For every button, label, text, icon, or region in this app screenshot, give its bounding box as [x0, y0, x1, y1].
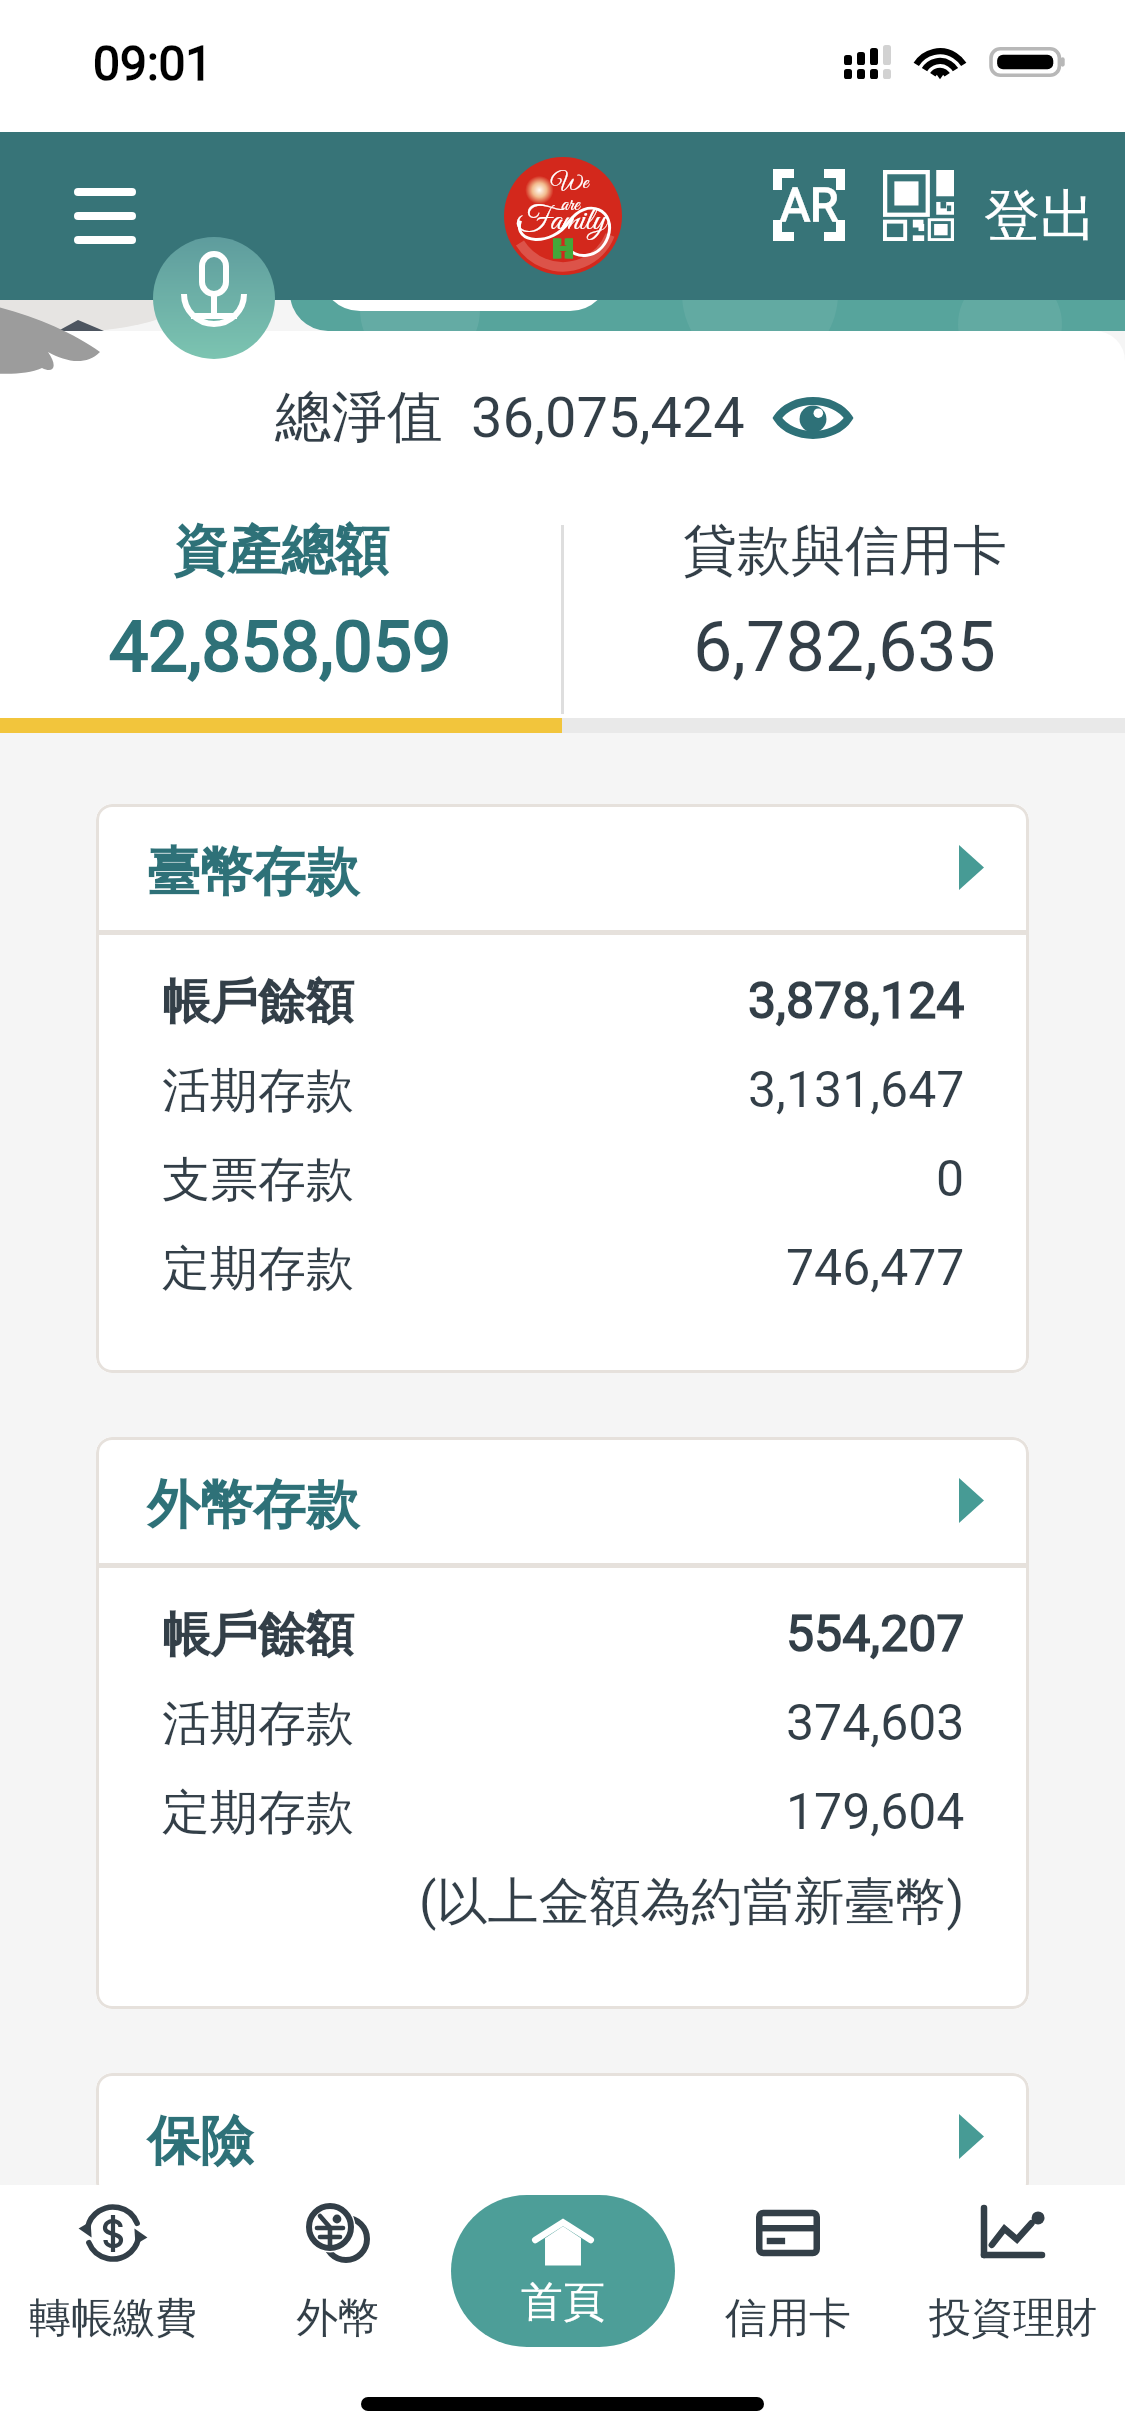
- staticText: 信用卡: [725, 2292, 851, 2345]
- staticText: (以上金額為約當新臺幣): [419, 1870, 965, 1934]
- staticText: 登出: [984, 181, 1096, 252]
- staticText: 轉帳繳費: [29, 2292, 197, 2345]
- staticText: are: [561, 192, 580, 218]
- staticText: 746,477: [786, 1239, 965, 1298]
- button[interactable]: Menu: [45, 156, 165, 276]
- staticText: 貸款與信用卡: [683, 517, 1007, 585]
- button[interactable]: Home logo: [501, 154, 625, 278]
- staticText: 資產總額: [173, 517, 389, 585]
- staticText: We: [551, 168, 589, 197]
- staticText: 外幣: [296, 2292, 380, 2345]
- staticText: 定期存款: [162, 1783, 354, 1843]
- staticText: 374,603: [786, 1694, 965, 1753]
- staticText: 6,782,635: [693, 606, 996, 688]
- staticText: 36,075,424: [471, 385, 745, 451]
- button[interactable]: 信用卡: [675, 2185, 900, 2436]
- staticText: 支票存款: [162, 1150, 354, 1210]
- button[interactable]: 貸款與信用卡: [564, 517, 1125, 722]
- button[interactable]: 外幣存款: [96, 1437, 1029, 1563]
- staticText: 外幣存款: [147, 1472, 359, 1539]
- staticText: 首頁: [521, 2276, 605, 2329]
- button[interactable]: 保險: [96, 2073, 1029, 2199]
- staticText: 臺幣存款: [147, 839, 359, 906]
- button[interactable]: 總淨值: [0, 382, 1125, 453]
- staticText: 42,858,059: [109, 606, 452, 688]
- staticText: Family: [516, 200, 606, 243]
- staticText: 投資理財: [929, 2292, 1097, 2345]
- staticText: 179,604: [786, 1783, 965, 1842]
- button[interactable]: 投資理財: [900, 2185, 1125, 2436]
- button[interactable]: QR code scanner: [866, 153, 970, 257]
- staticText: 09:01: [93, 35, 213, 91]
- staticText: 活期存款: [162, 1061, 354, 1121]
- button[interactable]: 資產總額: [0, 517, 561, 722]
- staticText: 保險: [147, 2108, 253, 2175]
- button[interactable]: 臺幣存款: [96, 804, 1029, 930]
- button[interactable]: 外幣: [225, 2185, 450, 2436]
- staticText: 定期存款: [162, 1239, 354, 1299]
- staticText: 帳戶餘額: [162, 1605, 354, 1665]
- staticText: 帳戶餘額: [162, 972, 354, 1032]
- button[interactable]: 首頁: [451, 2195, 675, 2347]
- staticText: AR: [780, 178, 839, 232]
- staticText: 總淨值: [275, 382, 443, 453]
- button[interactable]: AR: [757, 153, 861, 257]
- button[interactable]: 登出: [974, 157, 1106, 276]
- staticText: 活期存款: [162, 1694, 354, 1754]
- staticText: 0: [936, 1150, 965, 1209]
- staticText: 554,207: [786, 1605, 965, 1664]
- staticText: 3,878,124: [748, 972, 965, 1031]
- button[interactable]: 轉帳繳費: [0, 2185, 225, 2436]
- staticText: 3,131,647: [748, 1061, 965, 1120]
